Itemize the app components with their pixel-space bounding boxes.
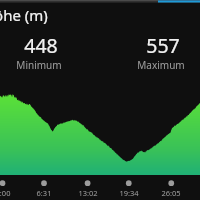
staticText: 448: [24, 32, 58, 59]
staticText: 6:31: [29, 188, 59, 198]
button[interactable]: 448: [0, 32, 102, 73]
staticText: Minimum: [16, 58, 62, 72]
staticText: 0:00: [0, 188, 18, 198]
staticText: Maximum: [137, 58, 185, 72]
staticText: 26:05: [156, 188, 186, 198]
staticText: 13:02: [73, 188, 103, 198]
button[interactable]: 557: [102, 32, 200, 73]
staticText: 557: [146, 32, 180, 59]
staticText: 19:34: [114, 188, 144, 198]
staticText: Höhe (m): [0, 5, 48, 25]
